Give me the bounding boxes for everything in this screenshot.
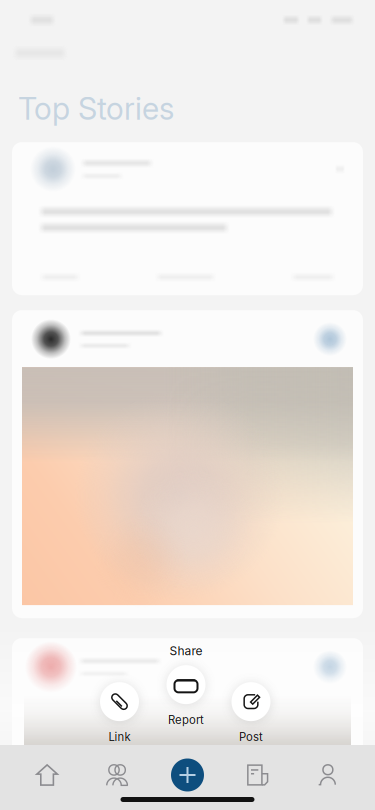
staticText: Top Stories xyxy=(18,90,174,127)
button[interactable]: News xyxy=(223,753,293,797)
staticText: Link xyxy=(108,730,130,744)
staticText: Post xyxy=(239,730,263,744)
button[interactable]: Link xyxy=(100,682,139,744)
button[interactable]: Profile xyxy=(293,753,363,797)
button[interactable]: Create post xyxy=(152,753,223,797)
button[interactable]: Post xyxy=(231,682,270,744)
button[interactable]: Report xyxy=(166,665,205,727)
staticText: Report xyxy=(168,713,204,727)
button[interactable]: My Network xyxy=(82,753,152,797)
button[interactable]: Home xyxy=(12,753,82,797)
staticText: Share xyxy=(169,644,202,658)
